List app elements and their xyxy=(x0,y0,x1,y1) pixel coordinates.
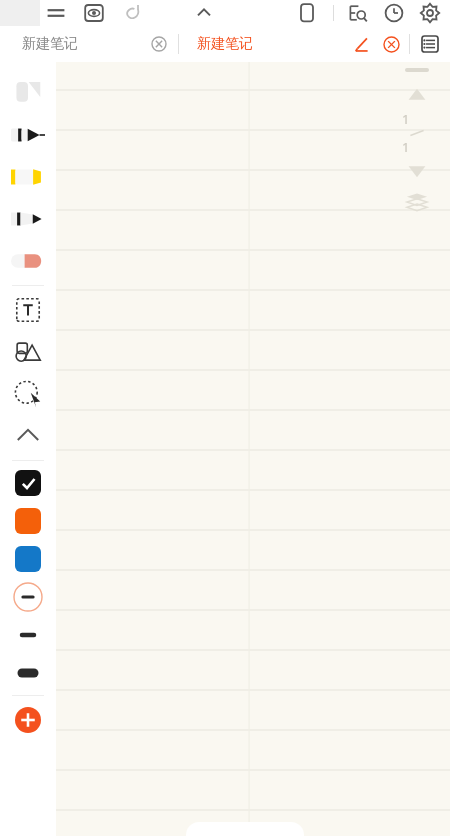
button[interactable]: Menu xyxy=(44,1,68,25)
button[interactable]: Highlighter xyxy=(0,156,56,198)
button[interactable]: Blue colour xyxy=(0,540,56,578)
button[interactable]: Text box xyxy=(0,289,56,331)
button[interactable]: Layers xyxy=(402,188,432,218)
button[interactable]: Shapes xyxy=(0,331,56,373)
button[interactable]: Add xyxy=(7,699,49,741)
staticText: 1 xyxy=(402,110,432,128)
button[interactable]: Tab list xyxy=(418,32,442,56)
button[interactable]: Collapse xyxy=(0,415,56,457)
staticText: 新建笔记 xyxy=(22,35,78,53)
button[interactable]: Undo xyxy=(120,1,144,25)
button[interactable]: Search xyxy=(346,1,370,25)
button[interactable]: Thick stroke xyxy=(0,654,56,692)
button[interactable]: Orange colour xyxy=(0,502,56,540)
button[interactable]: Thin stroke xyxy=(0,578,56,616)
button[interactable]: Marker xyxy=(0,198,56,240)
button[interactable]: Previous page xyxy=(402,80,432,110)
button[interactable]: Shape pen xyxy=(0,72,56,114)
button[interactable]: Edit title xyxy=(349,32,373,56)
staticText: 1 xyxy=(402,138,432,156)
button[interactable]: 新建笔记 xyxy=(179,26,450,62)
button[interactable]: 新建笔记 xyxy=(0,26,178,62)
button[interactable]: Preview xyxy=(82,1,106,25)
button[interactable]: Fountain pen xyxy=(0,114,56,156)
button[interactable]: Page xyxy=(295,1,319,25)
button[interactable]: Black colour xyxy=(0,464,56,502)
button[interactable]: Close tab xyxy=(148,33,170,55)
button[interactable]: Recent xyxy=(382,1,406,25)
button[interactable]: Next page xyxy=(402,156,432,186)
button[interactable]: Lasso select xyxy=(0,373,56,415)
button[interactable]: Close tab xyxy=(379,32,403,56)
button[interactable]: Up xyxy=(192,1,216,25)
button[interactable]: Settings xyxy=(418,1,442,25)
button[interactable]: Medium stroke xyxy=(0,616,56,654)
staticText: 新建笔记 xyxy=(197,35,253,53)
button[interactable]: Eraser xyxy=(0,240,56,282)
